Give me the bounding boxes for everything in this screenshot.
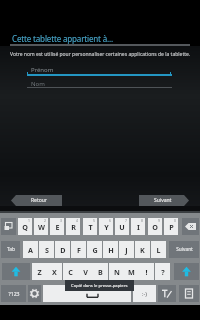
staticText: Nom: [31, 80, 45, 88]
staticText: Retour: [31, 197, 47, 204]
button[interactable]: A: [23, 241, 38, 258]
button[interactable]: ?123: [1, 285, 26, 302]
staticText: 0: [174, 218, 176, 223]
staticText: 5: [93, 218, 95, 223]
staticText: Y: [104, 222, 109, 232]
button[interactable]: Q: [18, 218, 32, 235]
button[interactable]: [43, 285, 131, 302]
button[interactable]: G: [87, 241, 102, 258]
staticText: P: [169, 222, 174, 232]
button[interactable]: Y: [99, 218, 113, 235]
staticText: A: [28, 245, 33, 255]
button[interactable]: [179, 285, 199, 302]
button[interactable]: C: [63, 263, 78, 280]
button[interactable]: F: [71, 241, 86, 258]
button[interactable]: K: [135, 241, 150, 258]
staticText: K: [140, 245, 145, 255]
staticText: Cette tablette appartient à...: [12, 33, 114, 44]
staticText: H: [108, 245, 114, 255]
button[interactable]: P: [164, 218, 178, 235]
staticText: F: [77, 245, 81, 255]
button[interactable]: [1, 218, 16, 235]
staticText: J: [125, 245, 128, 255]
button[interactable]: [158, 285, 176, 302]
staticText: E: [55, 222, 60, 232]
button[interactable]: T: [83, 218, 97, 235]
staticText: 7: [125, 218, 127, 223]
staticText: Suivant: [176, 246, 193, 253]
button[interactable]: Suivant: [169, 241, 199, 258]
button[interactable]: S: [39, 241, 54, 258]
staticText: U: [119, 222, 125, 232]
button[interactable]: O: [148, 218, 162, 235]
button[interactable]: U: [115, 218, 129, 235]
staticText: Suivant: [154, 197, 172, 204]
button[interactable]: W: [34, 218, 48, 235]
button[interactable]: R: [66, 218, 80, 235]
staticText: Z: [37, 267, 42, 277]
staticText: D: [60, 245, 66, 255]
button[interactable]: [28, 285, 41, 302]
staticText: R: [71, 222, 76, 232]
staticText: N: [114, 267, 120, 277]
button[interactable]: M: [124, 263, 139, 280]
staticText: Copié dans le presse-papiers: [71, 283, 128, 289]
button[interactable]: X: [47, 263, 62, 280]
button[interactable]: H: [103, 241, 118, 258]
staticText: Prénom: [31, 66, 54, 74]
staticText: I: [137, 222, 140, 232]
staticText: S: [45, 245, 49, 255]
button[interactable]: Suivant: [139, 195, 189, 206]
staticText: T: [88, 222, 93, 232]
button[interactable]: E: [50, 218, 64, 235]
staticText: ?: [161, 267, 165, 277]
button[interactable]: V: [78, 263, 93, 280]
staticText: Tab: [7, 246, 15, 253]
button[interactable]: :-): [133, 285, 156, 302]
staticText: 4: [76, 218, 78, 223]
staticText: O: [152, 222, 158, 232]
button[interactable]: L: [151, 241, 166, 258]
staticText: :-): [142, 290, 147, 297]
staticText: !: [145, 267, 148, 277]
staticText: 6: [109, 218, 111, 223]
button[interactable]: D: [55, 241, 70, 258]
button[interactable]: J: [119, 241, 134, 258]
staticText: C: [68, 267, 73, 277]
staticText: G: [92, 245, 98, 255]
staticText: B: [98, 267, 103, 277]
staticText: 9: [158, 218, 160, 223]
button[interactable]: [182, 218, 199, 235]
button[interactable]: Z: [32, 263, 47, 280]
button[interactable]: Tab: [1, 241, 20, 258]
staticText: L: [156, 245, 161, 255]
staticText: M: [128, 267, 135, 277]
staticText: 8: [141, 218, 143, 223]
button[interactable]: N: [109, 263, 124, 280]
staticText: Votre nom est utilisé pour personnaliser…: [10, 51, 191, 58]
staticText: V: [83, 267, 88, 277]
staticText: 2: [44, 218, 46, 223]
staticText: W: [38, 222, 45, 232]
button[interactable]: [2, 263, 30, 280]
button[interactable]: I: [131, 218, 145, 235]
staticText: X: [52, 267, 57, 277]
staticText: Q: [22, 222, 28, 232]
staticText: ?123: [8, 290, 20, 297]
staticText: 1: [28, 218, 30, 223]
button[interactable]: !: [139, 263, 154, 280]
staticText: 3: [60, 218, 62, 223]
button[interactable]: B: [93, 263, 108, 280]
button[interactable]: [174, 263, 199, 280]
button[interactable]: Retour: [11, 195, 62, 206]
button[interactable]: ?: [155, 263, 170, 280]
